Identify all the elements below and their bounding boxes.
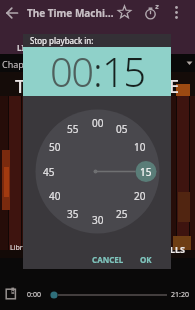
staticText: : [93,44,102,93]
staticText: 55 [67,122,79,136]
button[interactable] [36,110,159,233]
button[interactable]: OK [134,251,158,267]
button[interactable] [2,284,18,302]
staticText: 00 [50,44,93,93]
button[interactable] [166,1,188,24]
staticText: 21:20 [171,290,189,300]
button[interactable] [113,1,136,24]
staticText: 0:00 [27,290,41,300]
staticText: 40 [49,189,61,203]
staticText: 05 [116,122,128,136]
staticText: 25 [116,207,128,221]
button[interactable] [140,1,163,24]
staticText: Libr [10,243,23,253]
staticText: Chapter 1 [2,58,44,70]
staticText: 35 [67,207,79,221]
button[interactable] [0,54,195,72]
staticText: CANCEL [92,254,124,265]
staticText: 15 [102,44,145,93]
staticText: 20 [134,189,146,203]
staticText: 30 [92,213,104,227]
staticText: 00 [92,116,104,130]
staticText: LI [17,42,25,53]
staticText: The Time Machi… [27,6,114,20]
button[interactable]: CANCEL [88,251,128,267]
staticText: 15 [140,165,152,179]
staticText: 10 [134,140,146,154]
staticText: 45 [43,165,55,179]
staticText: Stop playback in: [30,35,94,46]
button[interactable] [0,0,26,26]
staticText: OK [140,254,152,265]
staticText: 50 [49,140,61,154]
staticText: T [15,74,26,99]
staticText: LLS [170,243,186,255]
staticText: E [169,74,180,99]
